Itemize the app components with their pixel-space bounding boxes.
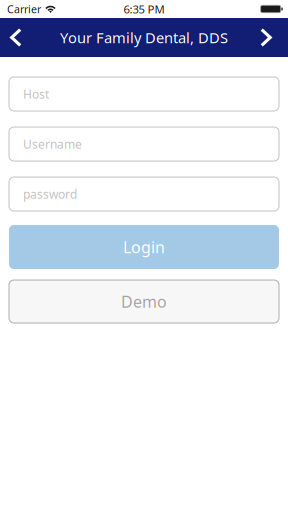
button[interactable]: Login — [9, 225, 279, 269]
button[interactable]: Forward — [250, 18, 282, 57]
staticText: Host — [23, 86, 49, 102]
staticText: Your Family Dental, DDS — [60, 27, 228, 47]
staticText: password — [23, 186, 77, 202]
staticText: Username — [23, 136, 82, 152]
button[interactable]: Demo — [9, 280, 279, 323]
staticText: Carrier — [7, 2, 41, 16]
button[interactable]: Back — [0, 18, 32, 57]
staticText: 6:35 PM — [123, 1, 164, 17]
staticText: Login — [123, 236, 165, 258]
staticText: Demo — [121, 291, 167, 312]
